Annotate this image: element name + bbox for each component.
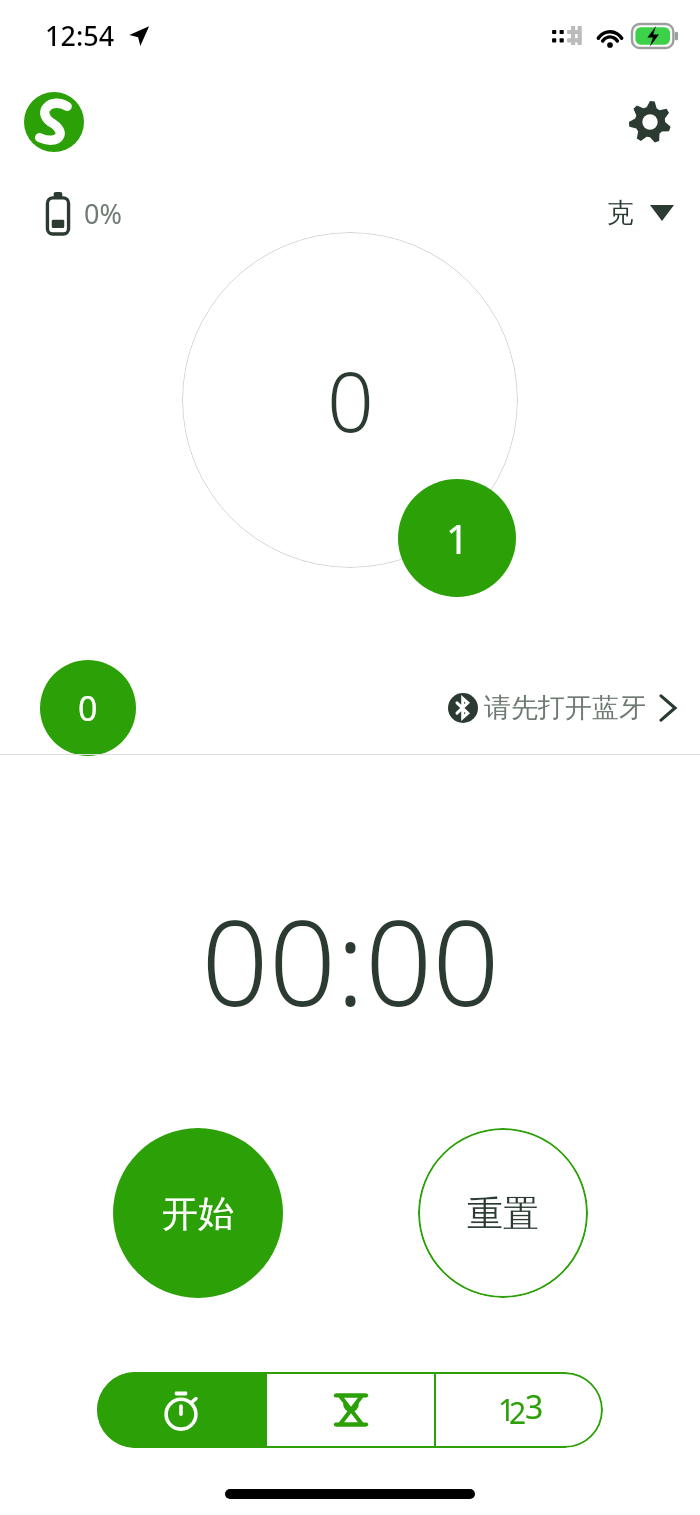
staticText: 00:00 <box>201 880 500 1030</box>
button[interactable]: 重置 <box>418 1128 588 1298</box>
button[interactable]: Counter <box>436 1372 603 1448</box>
staticText: 0 <box>327 344 374 456</box>
staticText: 3 <box>525 1385 544 1427</box>
staticText: 请先打开蓝牙 <box>484 691 646 725</box>
staticText: 12:54 <box>45 17 115 54</box>
button[interactable]: 0 <box>40 660 136 756</box>
button[interactable]: Settings <box>622 94 678 150</box>
button[interactable]: 克 <box>607 196 674 230</box>
staticText: 1 <box>498 1389 516 1430</box>
button[interactable]: Logo <box>24 92 84 152</box>
button[interactable]: 1 <box>398 479 516 597</box>
button[interactable]: Timer <box>267 1372 434 1448</box>
button[interactable]: Stopwatch <box>97 1372 265 1448</box>
staticText: 重置 <box>467 1191 539 1236</box>
staticText: 0 <box>78 685 98 731</box>
staticText: 克 <box>607 196 634 230</box>
staticText: 开始 <box>162 1191 234 1236</box>
button[interactable]: 请先打开蓝牙 <box>448 691 678 725</box>
button[interactable]: 0 <box>182 232 518 568</box>
staticText: 2 <box>509 1392 527 1433</box>
button[interactable]: 开始 <box>113 1128 283 1298</box>
staticText: 0% <box>84 195 122 232</box>
staticText: 1 <box>446 511 469 565</box>
